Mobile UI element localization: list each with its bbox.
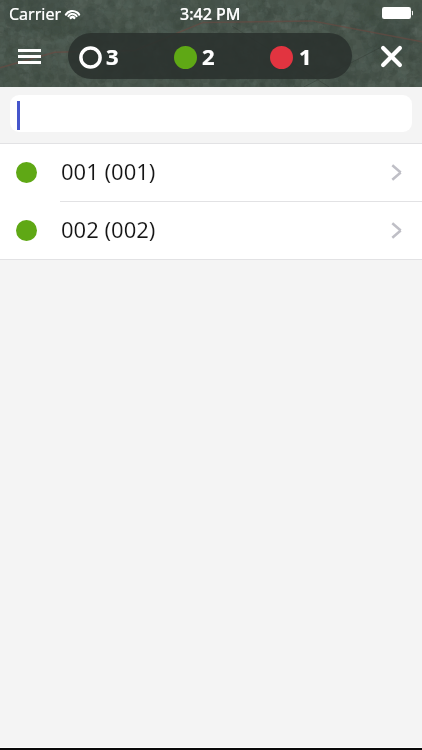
button[interactable]: Close [369, 34, 413, 78]
button[interactable] [10, 95, 412, 132]
staticText: Carrier [9, 3, 62, 25]
button[interactable]: 002 (002) [0, 202, 422, 259]
staticText: 3:42 PM [180, 3, 241, 25]
staticText: 1 [299, 41, 312, 71]
staticText: 3 [106, 41, 119, 71]
button[interactable]: Menu [7, 34, 51, 78]
staticText: 002 (002) [61, 214, 156, 244]
button[interactable]: 001 (001) [0, 144, 422, 202]
staticText: 2 [202, 41, 215, 71]
button[interactable]: 3 [68, 33, 352, 79]
staticText: 001 (001) [61, 156, 156, 186]
